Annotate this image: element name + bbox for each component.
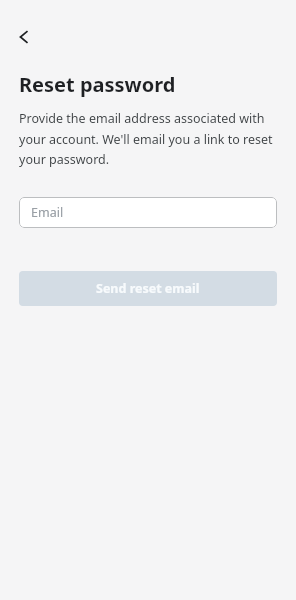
staticText: Send reset email [96,280,200,297]
staticText: Reset password [19,71,176,98]
button[interactable]: Send reset email [19,271,277,306]
staticText: Email [31,204,64,221]
button[interactable]: Email [19,197,277,228]
button[interactable]: Back [7,20,41,54]
staticText: Provide the email address associated wit… [19,110,280,167]
